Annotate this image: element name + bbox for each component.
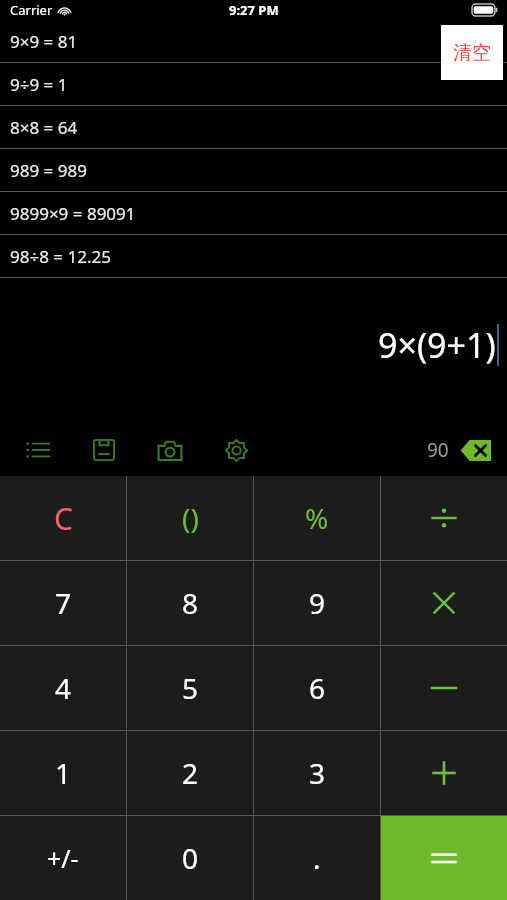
staticText: 90 bbox=[427, 437, 449, 463]
button[interactable]: Equals bbox=[381, 816, 507, 900]
button[interactable]: 0 bbox=[127, 816, 253, 900]
staticText: 989 = 989 bbox=[10, 159, 87, 182]
button[interactable]: 9÷9 = 1 bbox=[0, 63, 507, 105]
staticText: 8 bbox=[182, 584, 199, 622]
staticText: 2 bbox=[182, 754, 199, 792]
button[interactable]: History list bbox=[22, 434, 54, 466]
staticText: 6 bbox=[309, 669, 326, 707]
button[interactable]: . bbox=[254, 816, 380, 900]
button[interactable]: 8×8 = 64 bbox=[0, 106, 507, 148]
staticText: 7 bbox=[55, 584, 72, 622]
button[interactable]: 989 = 989 bbox=[0, 149, 507, 191]
staticText: () bbox=[182, 499, 199, 537]
staticText: 0 bbox=[182, 839, 199, 877]
staticText: 4 bbox=[55, 669, 72, 707]
button[interactable]: +/- bbox=[0, 816, 126, 900]
button[interactable]: 8 bbox=[127, 561, 253, 645]
button[interactable]: Backspace bbox=[459, 437, 493, 463]
staticText: 3 bbox=[309, 754, 326, 792]
button[interactable]: 6 bbox=[254, 646, 380, 730]
staticText: 1 bbox=[55, 754, 72, 792]
staticText: 9:27 PM bbox=[229, 1, 279, 19]
button[interactable]: Multiply bbox=[381, 561, 507, 645]
staticText: . bbox=[313, 839, 321, 877]
button[interactable]: 2 bbox=[127, 731, 253, 815]
staticText: 清空 bbox=[453, 41, 491, 65]
staticText: 9×9 = 81 bbox=[10, 30, 78, 53]
staticText: 5 bbox=[182, 669, 199, 707]
button[interactable]: 9×9 = 81 bbox=[0, 20, 507, 62]
staticText: Carrier bbox=[10, 1, 53, 19]
button[interactable]: Settings bbox=[220, 434, 252, 466]
button[interactable]: Save bbox=[88, 434, 120, 466]
staticText: C bbox=[54, 498, 73, 539]
button[interactable]: 1 bbox=[0, 731, 126, 815]
staticText: +/- bbox=[47, 841, 79, 875]
button[interactable]: () bbox=[127, 476, 253, 560]
staticText: 9÷9 = 1 bbox=[10, 73, 68, 96]
button[interactable]: Subtract bbox=[381, 646, 507, 730]
button[interactable]: Divide bbox=[381, 476, 507, 560]
staticText: % bbox=[305, 499, 329, 537]
button[interactable]: 9899×9 = 89091 bbox=[0, 192, 507, 234]
button[interactable]: 4 bbox=[0, 646, 126, 730]
staticText: 9 bbox=[309, 584, 326, 622]
button[interactable]: 5 bbox=[127, 646, 253, 730]
staticText: 9899×9 = 89091 bbox=[10, 202, 136, 225]
staticText: 9×(9+1) bbox=[378, 322, 496, 368]
button[interactable]: Add bbox=[381, 731, 507, 815]
button[interactable]: Screenshot bbox=[154, 434, 186, 466]
button[interactable]: 3 bbox=[254, 731, 380, 815]
button[interactable]: C bbox=[0, 476, 126, 560]
staticText: 98÷8 = 12.25 bbox=[10, 245, 111, 268]
button[interactable]: % bbox=[254, 476, 380, 560]
button[interactable]: 7 bbox=[0, 561, 126, 645]
button[interactable]: 98÷8 = 12.25 bbox=[0, 235, 507, 277]
staticText: 8×8 = 64 bbox=[10, 116, 78, 139]
button[interactable]: 清空 bbox=[441, 25, 503, 80]
button[interactable]: 9 bbox=[254, 561, 380, 645]
